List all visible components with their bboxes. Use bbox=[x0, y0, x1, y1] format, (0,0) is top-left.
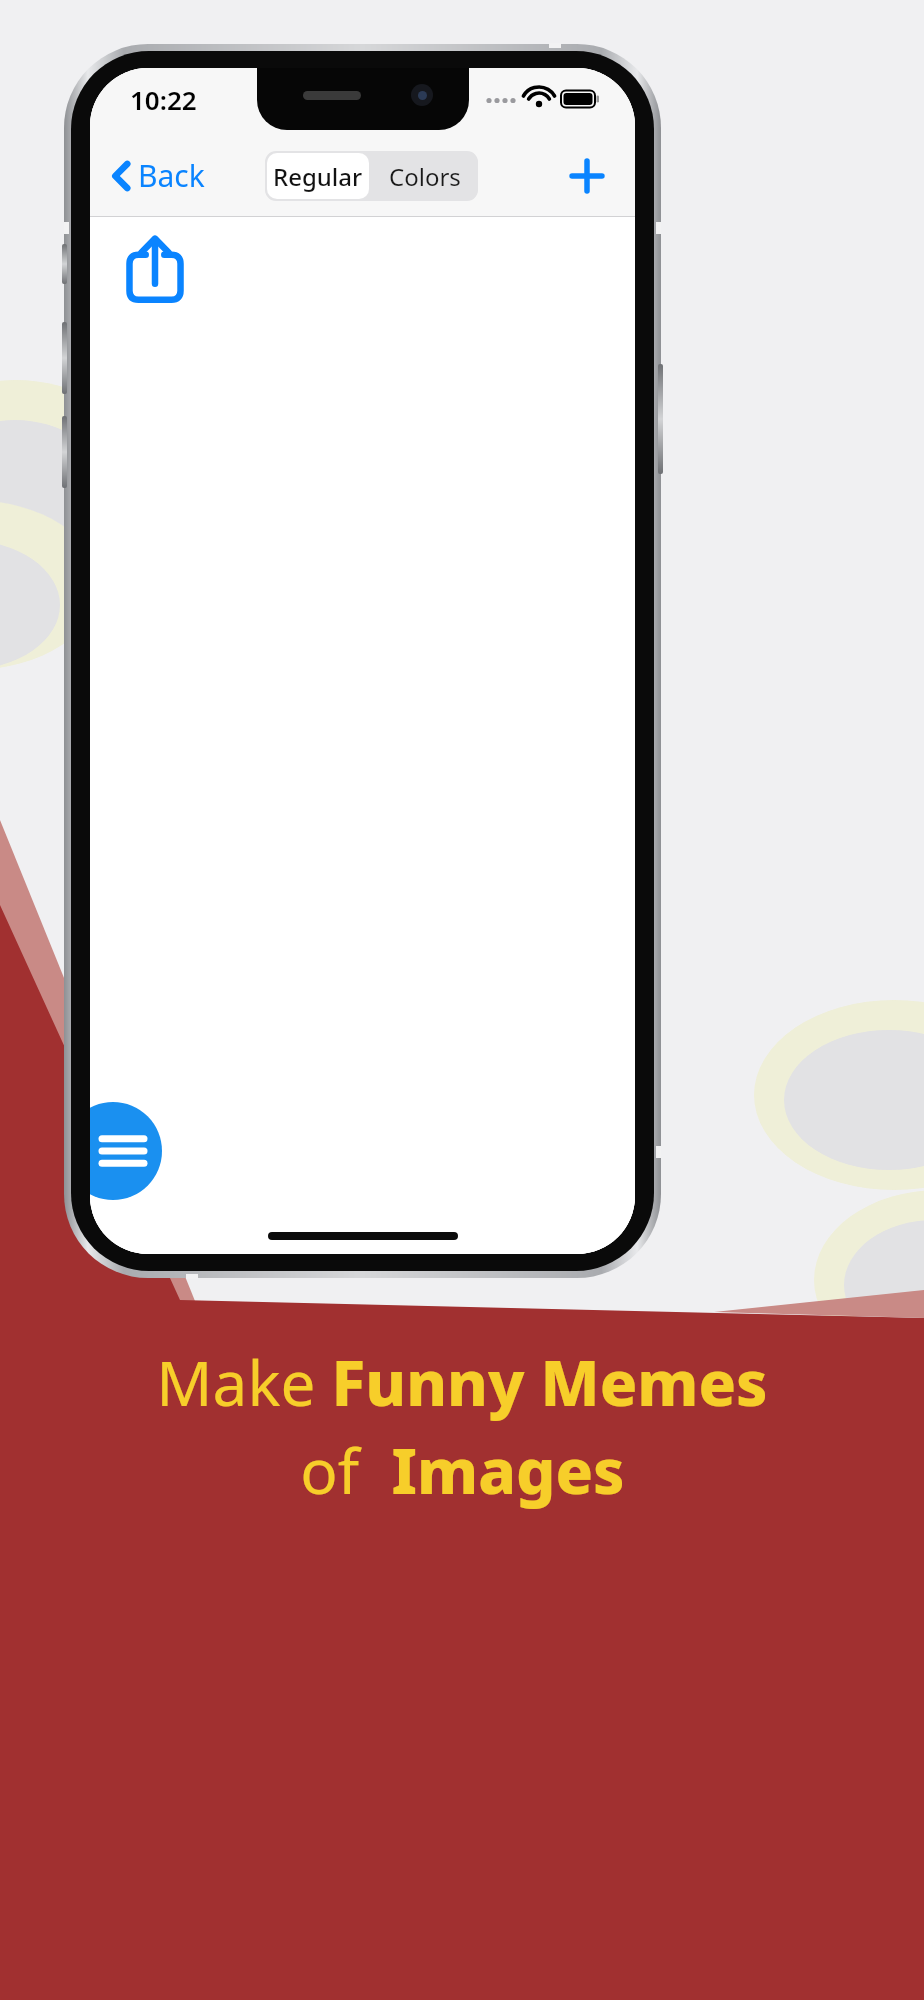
button[interactable]: Menu bbox=[90, 1102, 162, 1200]
staticText: 10:22 bbox=[130, 82, 197, 117]
staticText: of Images bbox=[300, 1428, 625, 1512]
staticText: Colors bbox=[389, 160, 461, 193]
button[interactable]: Back bbox=[104, 149, 213, 202]
staticText: Make Funny Memes bbox=[156, 1340, 768, 1424]
button[interactable]: Add bbox=[561, 150, 613, 202]
button[interactable]: Colors bbox=[371, 151, 478, 201]
staticText: Regular bbox=[273, 160, 363, 193]
button[interactable]: Regular bbox=[267, 153, 369, 199]
staticText: Back bbox=[138, 155, 205, 196]
button[interactable]: Share bbox=[118, 229, 192, 307]
